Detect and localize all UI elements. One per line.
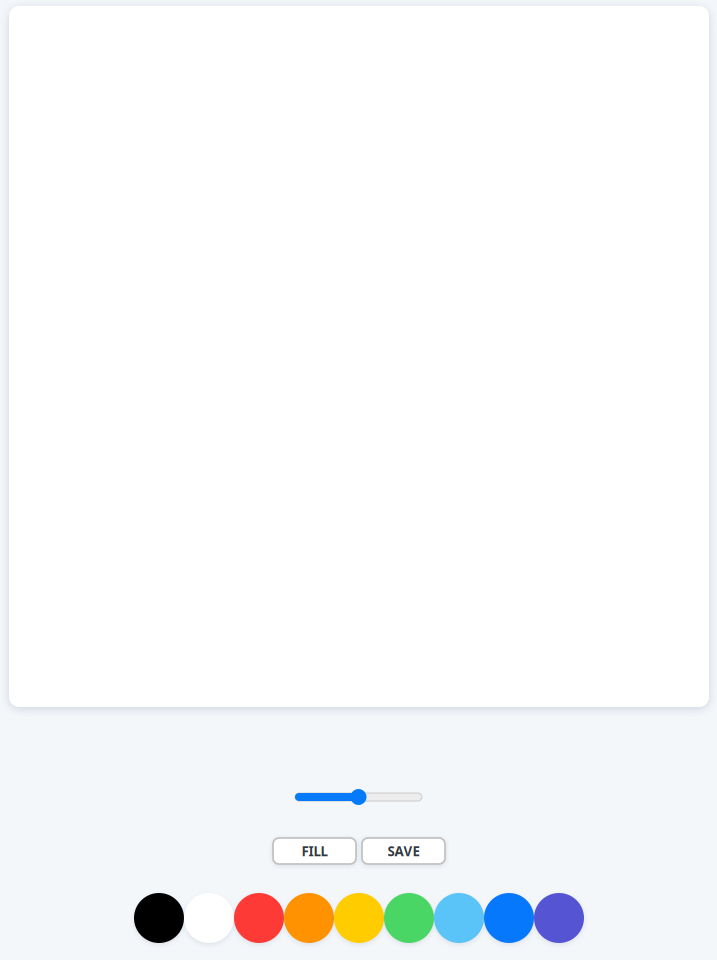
staticText: FILL	[301, 842, 327, 860]
button[interactable]: White	[184, 893, 234, 943]
button[interactable]: Black	[134, 893, 184, 943]
button[interactable]: Green	[384, 893, 434, 943]
button[interactable]: Brush size	[295, 789, 422, 805]
button[interactable]: Orange	[284, 893, 334, 943]
staticText: SAVE	[387, 842, 419, 860]
button[interactable]: Red	[234, 893, 284, 943]
button[interactable]: Blue	[484, 893, 534, 943]
button[interactable]: Light blue	[434, 893, 484, 943]
button[interactable]: FILL	[273, 838, 356, 864]
button[interactable]: SAVE	[362, 838, 445, 864]
button[interactable]: Yellow	[334, 893, 384, 943]
button[interactable]: Purple	[534, 893, 584, 943]
